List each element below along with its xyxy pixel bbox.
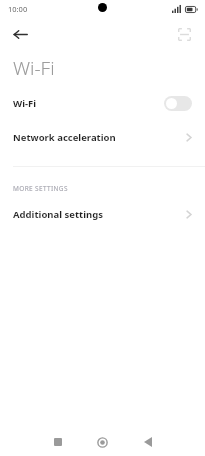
button[interactable]: Back — [125, 428, 170, 456]
button[interactable]: Home — [80, 428, 125, 456]
button[interactable]: Wi-Fi toggle — [164, 96, 192, 111]
staticText: MORE SETTINGS — [13, 184, 68, 193]
staticText: Additional settings — [13, 208, 186, 221]
button[interactable]: Back — [5, 19, 35, 49]
staticText: 10:00 — [8, 4, 28, 14]
staticText: Network acceleration — [13, 131, 186, 144]
staticText: Wi-Fi — [13, 97, 164, 110]
button[interactable]: Network acceleration — [0, 120, 205, 154]
button[interactable]: Recent apps — [35, 428, 80, 456]
button[interactable]: Additional settings — [0, 197, 205, 231]
button[interactable]: Wi-Fi — [0, 86, 205, 120]
button[interactable]: Scan QR code — [169, 19, 199, 49]
staticText: Wi-Fi — [13, 55, 55, 81]
